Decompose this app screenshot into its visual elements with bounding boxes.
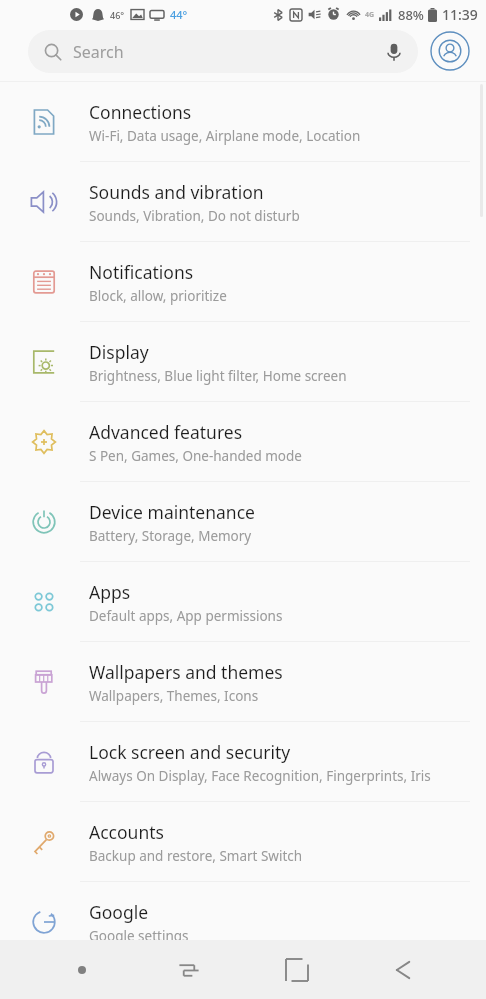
staticText: Brightness, Blue light filter, Home scre… <box>89 367 347 385</box>
staticText: Apps <box>89 580 131 604</box>
button[interactable]: Notifications <box>0 242 486 322</box>
staticText: Always On Display, Face Recognition, Fin… <box>89 767 431 785</box>
staticText: Advanced features <box>89 420 243 444</box>
staticText: 44° <box>170 7 188 22</box>
staticText: Sounds, Vibration, Do not disturb <box>89 207 300 225</box>
button[interactable]: Home <box>271 944 323 996</box>
button[interactable]: Account <box>428 29 472 73</box>
button[interactable]: Google <box>0 882 486 962</box>
staticText: Wi-Fi, Data usage, Airplane mode, Locati… <box>89 127 361 145</box>
staticText: 11:39 <box>442 5 478 24</box>
staticText: Google <box>89 900 149 924</box>
button[interactable]: Back <box>378 944 430 996</box>
staticText: Sounds and vibration <box>89 180 264 204</box>
button[interactable]: Sounds and vibration <box>0 162 486 242</box>
staticText: Display <box>89 340 149 364</box>
staticText: Backup and restore, Smart Switch <box>89 847 303 865</box>
staticText: Device maintenance <box>89 500 255 524</box>
staticText: Battery, Storage, Memory <box>89 527 252 545</box>
button[interactable]: Recent apps <box>163 944 215 996</box>
staticText: Block, allow, prioritize <box>89 287 227 305</box>
staticText: 46° <box>110 9 125 21</box>
staticText: Search <box>73 41 124 63</box>
staticText: Lock screen and security <box>89 740 291 764</box>
staticText: Notifications <box>89 260 194 284</box>
button[interactable]: Device maintenance <box>0 482 486 562</box>
staticText: Connections <box>89 100 192 124</box>
button[interactable]: Apps <box>0 562 486 642</box>
button[interactable]: Voice search <box>382 40 406 64</box>
staticText: Accounts <box>89 820 164 844</box>
button[interactable]: Connections <box>0 82 486 162</box>
button[interactable]: Advanced features <box>0 402 486 482</box>
button[interactable]: Lock screen and security <box>0 722 486 802</box>
staticText: Wallpapers and themes <box>89 660 283 684</box>
staticText: Google settings <box>89 927 189 945</box>
staticText: Wallpapers, Themes, Icons <box>89 687 259 705</box>
button[interactable]: Wallpapers and themes <box>0 642 486 722</box>
staticText: 88% <box>398 6 424 24</box>
staticText: 4G <box>365 10 375 20</box>
button[interactable]: Accounts <box>0 802 486 882</box>
staticText: Default apps, App permissions <box>89 607 283 625</box>
staticText: S Pen, Games, One-handed mode <box>89 447 302 465</box>
button[interactable]: Display <box>0 322 486 402</box>
button[interactable]: Search <box>28 30 418 73</box>
